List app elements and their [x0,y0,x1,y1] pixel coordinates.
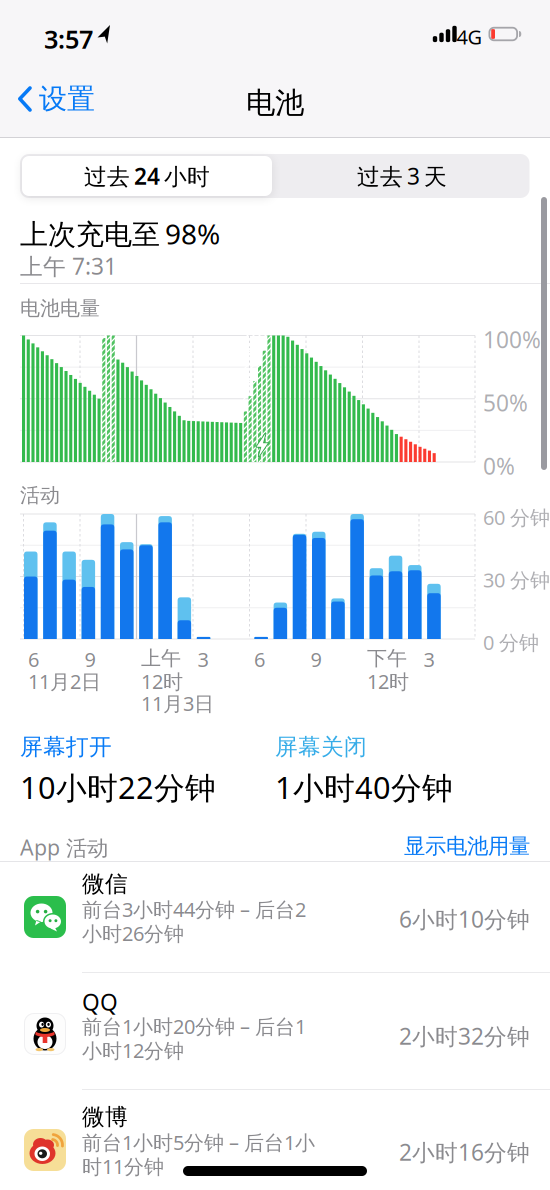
staticText: 上午 7:31 [20,251,117,281]
staticText: 上次充电至 98% [20,215,220,252]
button[interactable]: 设置 [17,84,95,114]
staticText: 12时 [141,668,183,695]
staticText: 下午 [367,646,407,671]
staticText: 6 [28,646,39,673]
staticText: 屏幕打开 [20,733,112,761]
staticText: 电池电量 [20,296,100,321]
staticText: 屏幕关闭 [275,733,367,761]
staticText: 0% [483,451,515,481]
staticText: 小时12分钟 [82,1037,184,1064]
button[interactable]: 显示电池用量 [20,833,530,859]
button[interactable]: 微博 [0,1099,550,1190]
staticText: 过去 3 天 [357,161,447,191]
staticText: 3:57 [44,22,93,56]
staticText: 10小时22分钟 [20,767,216,807]
staticText: 时11分钟 [82,1153,164,1180]
staticText: 11月2日 [28,668,101,695]
staticText: QQ [82,987,118,1017]
staticText: 前台3小时44分钟 – 后台2 [82,896,306,923]
button[interactable]: 微信 [0,866,550,972]
button[interactable]: 过去 3 天 [277,156,527,196]
staticText: 微博 [82,1103,128,1131]
staticText: 6 [254,646,265,673]
staticText: 活动 [20,483,60,508]
staticText: App 活动 [20,833,108,861]
staticText: 60 分钟 [483,504,550,531]
staticText: 100% [483,324,541,355]
staticText: 11月3日 [141,690,214,717]
staticText: 过去 24 小时 [84,161,210,191]
staticText: 设置 [39,82,95,116]
staticText: 显示电池用量 [404,833,530,859]
staticText: 9 [310,646,321,673]
staticText: 1小时40分钟 [275,767,453,807]
staticText: 小时26分钟 [82,920,184,947]
staticText: 2小时32分钟 [399,1021,530,1051]
staticText: 上午 [141,646,181,671]
staticText: 3 [197,646,208,673]
staticText: 前台1小时5分钟 – 后台1小 [82,1129,315,1156]
button[interactable]: 过去 24 小时 [22,156,272,196]
staticText: 4G [456,23,482,50]
button[interactable]: QQ [0,983,550,1089]
staticText: 电池 [246,85,304,121]
button[interactable]: 屏幕打开 [20,733,216,808]
staticText: 2小时16分钟 [399,1137,530,1167]
staticText: 0 分钟 [483,629,539,656]
staticText: 前台1小时20分钟 – 后台1 [82,1013,306,1040]
staticText: 6小时10分钟 [399,904,530,934]
staticText: 微信 [82,870,128,898]
staticText: 50% [483,388,528,418]
staticText: 12时 [367,668,409,695]
staticText: 3 [423,646,434,673]
staticText: 9 [84,646,95,673]
button[interactable]: 屏幕关闭 [275,733,453,808]
staticText: 30 分钟 [483,566,550,593]
